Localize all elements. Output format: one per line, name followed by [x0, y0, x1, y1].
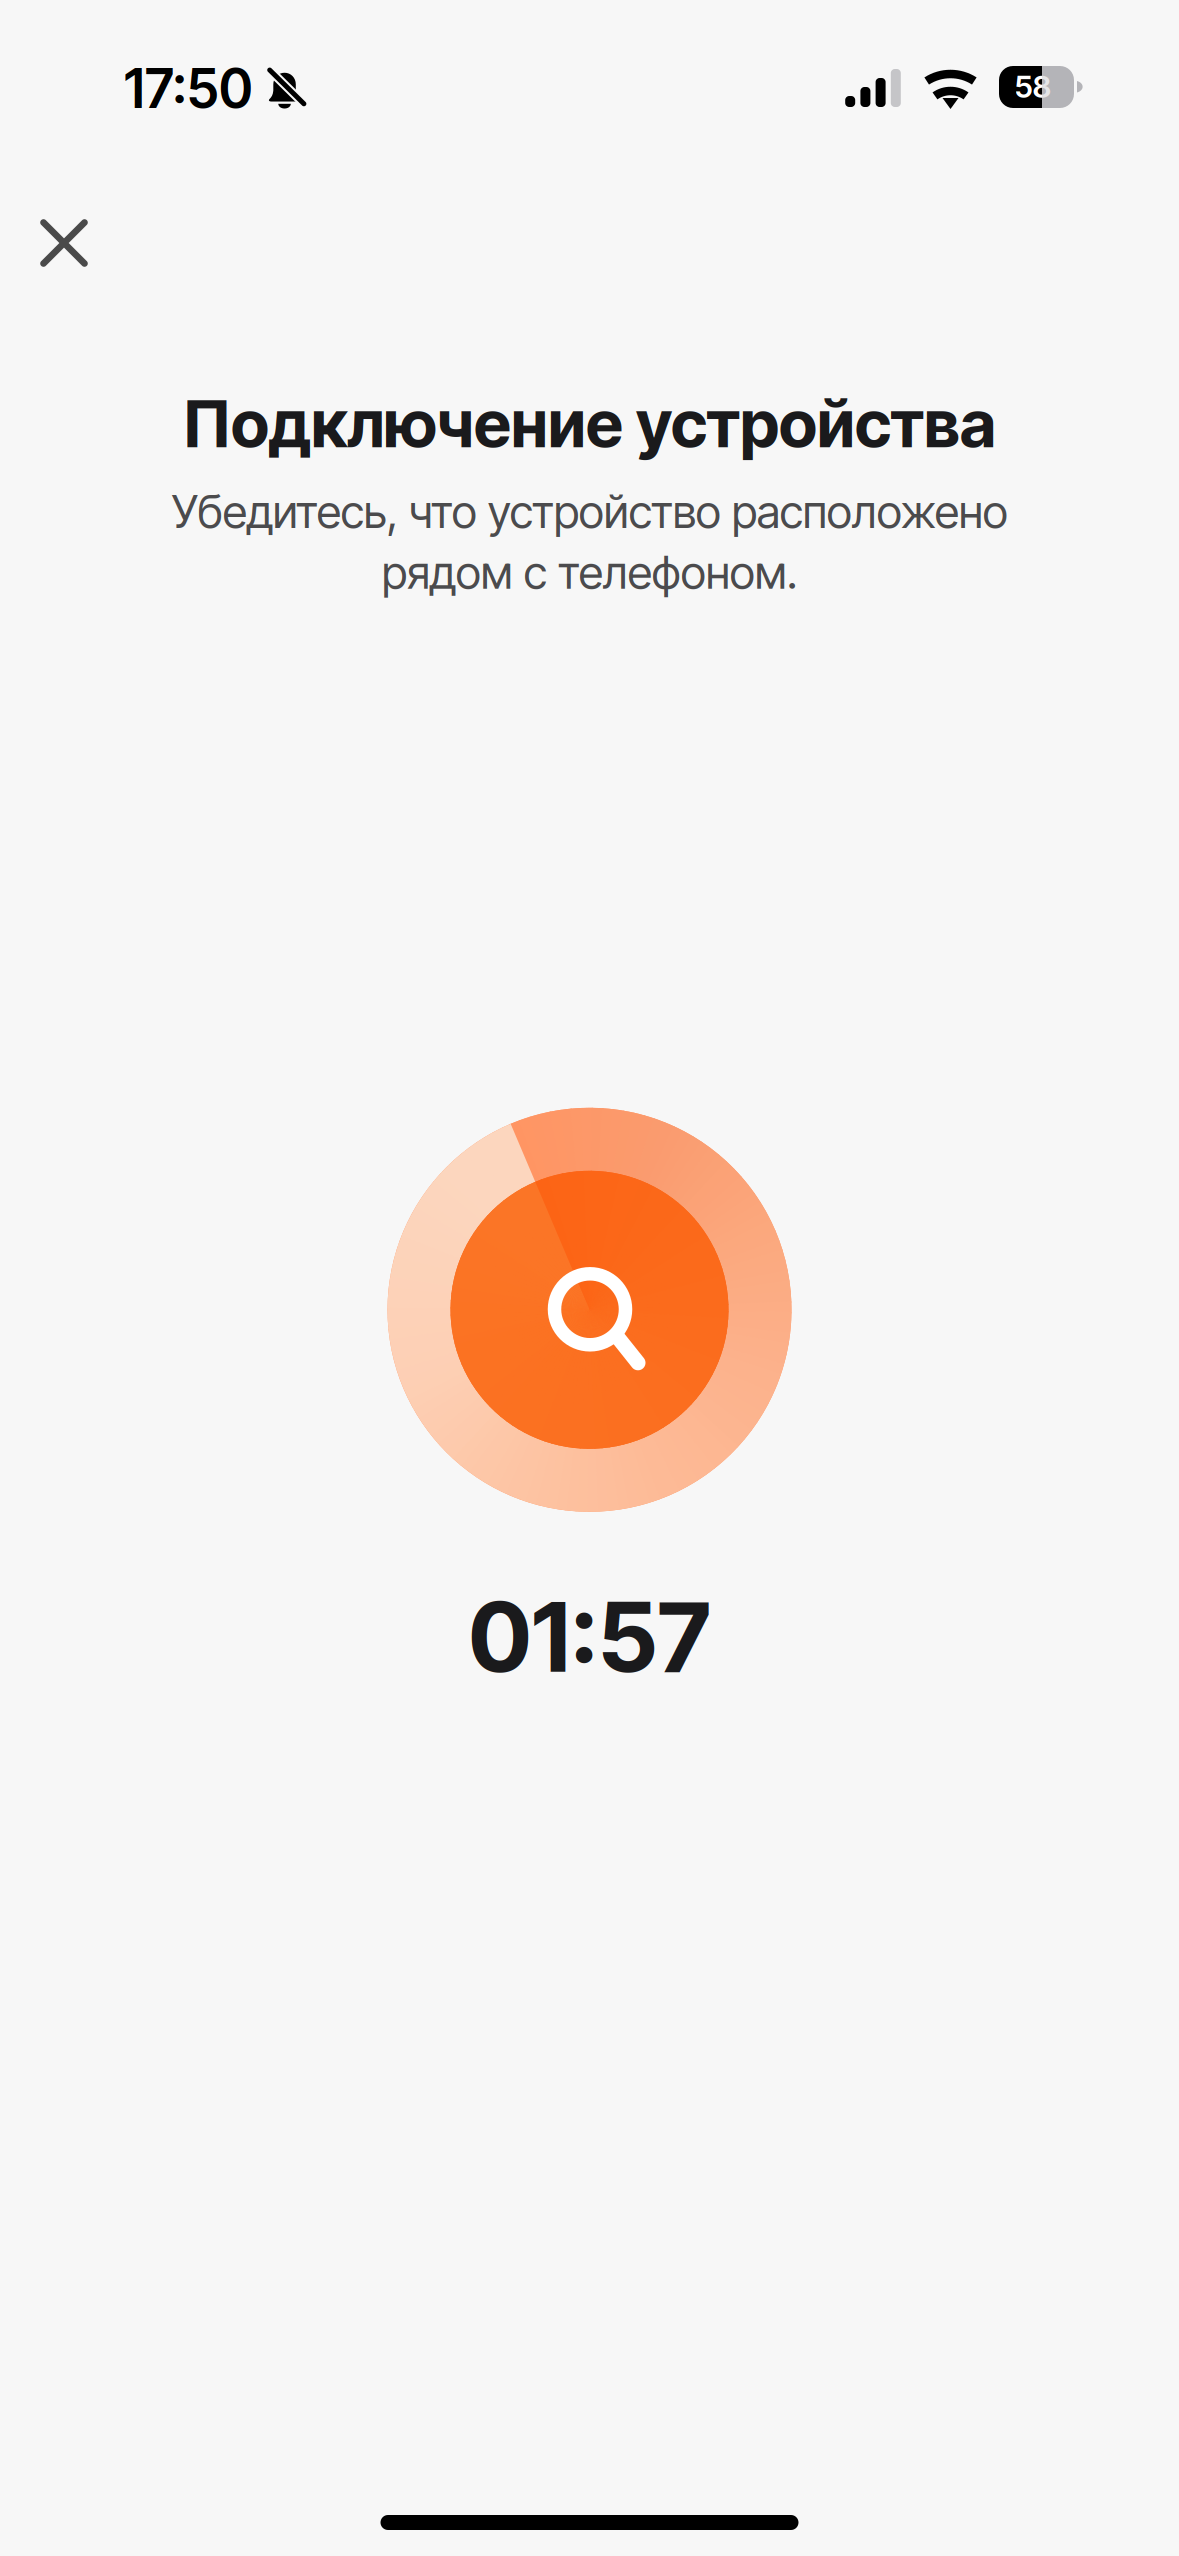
staticText: 58 — [1014, 68, 1051, 105]
staticText: Убедитесь, что устройство расположено ря… — [171, 484, 1007, 600]
staticText: 17:50 — [124, 56, 253, 121]
staticText: Подключение устройства — [183, 384, 996, 463]
staticText: 58 — [1014, 68, 1051, 105]
button[interactable]: Закрыть — [8, 187, 120, 299]
staticText: 01:57 — [468, 1579, 710, 1695]
